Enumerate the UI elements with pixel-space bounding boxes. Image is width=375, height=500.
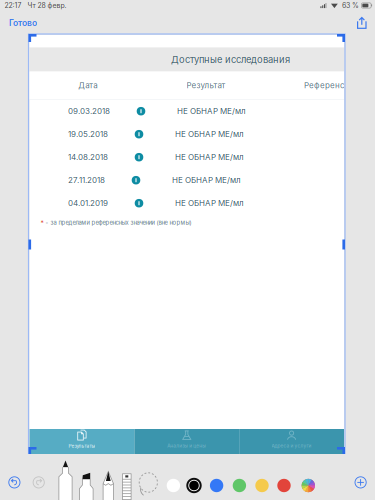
- staticText: 63 %: [342, 1, 359, 10]
- button[interactable]: Colour: [230, 476, 248, 494]
- button[interactable]: Add: [352, 473, 370, 491]
- staticText: НЕ ОБНАР МЕ/мл: [177, 106, 246, 116]
- staticText: 04.01.2019: [68, 198, 108, 208]
- button[interactable]: Colour picker: [299, 476, 317, 494]
- button[interactable]: Redo: [30, 473, 48, 491]
- button[interactable]: Share: [353, 15, 371, 31]
- button[interactable]: Результаты: [29, 429, 134, 454]
- button[interactable]: Colour: [253, 476, 271, 494]
- staticText: 19.05.2018: [68, 129, 108, 139]
- staticText: Доступные исследования: [171, 54, 290, 65]
- staticText: НЕ ОБНАР МЕ/мл: [175, 129, 244, 139]
- button[interactable]: Адреса и услуги: [239, 429, 344, 454]
- button[interactable]: Colour: [208, 476, 226, 494]
- button[interactable]: Undo: [5, 473, 23, 491]
- button[interactable]: Colour: [164, 476, 182, 494]
- button[interactable]: Готово: [0, 14, 46, 32]
- staticText: 09.03.2018: [68, 106, 110, 116]
- staticText: Результаты: [68, 443, 95, 449]
- staticText: Адреса и услуги: [272, 443, 312, 449]
- staticText: Готово: [9, 18, 37, 28]
- staticText: Дата: [78, 80, 97, 90]
- staticText: 14.08.2018: [68, 152, 108, 162]
- staticText: - за пределами референсных значений (вне…: [43, 219, 191, 226]
- staticText: Результат: [187, 80, 226, 90]
- staticText: НЕ ОБНАР МЕ/мл: [175, 198, 244, 208]
- staticText: *: [40, 219, 43, 227]
- staticText: Анализы и цены: [167, 443, 206, 449]
- button[interactable]: Colour: [185, 476, 203, 494]
- staticText: Референсн: [304, 80, 350, 90]
- staticText: НЕ ОБНАР МЕ/мл: [175, 152, 244, 162]
- staticText: НЕ ОБНАР МЕ/мл: [172, 175, 241, 185]
- button[interactable]: Colour: [275, 476, 293, 494]
- staticText: 27.11.2018: [68, 175, 105, 185]
- staticText: 22:17 Чт 28 февр.: [4, 1, 66, 10]
- button[interactable]: Анализы и цены: [134, 429, 239, 454]
